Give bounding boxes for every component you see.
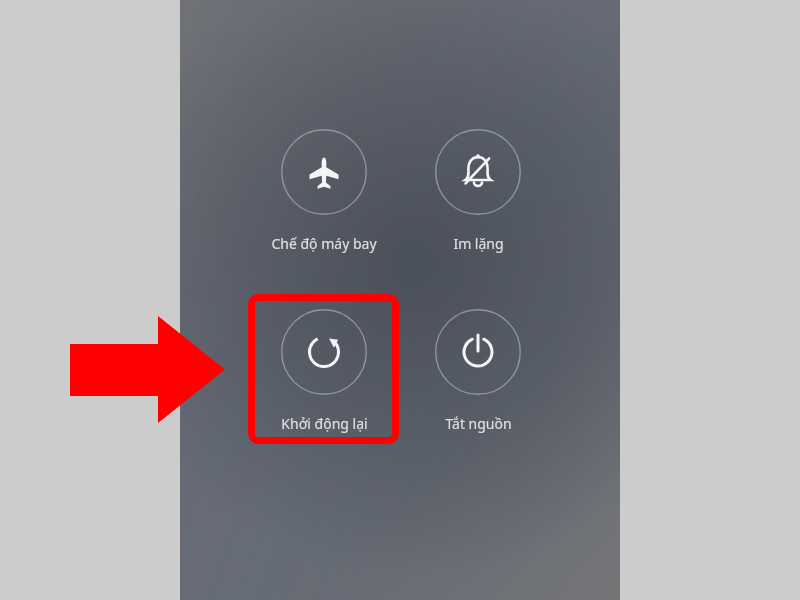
staticText: Im lặng	[453, 234, 504, 253]
staticText: Tắt nguồn	[445, 414, 512, 433]
button[interactable]: Silent mode	[403, 121, 553, 271]
button[interactable]: Airplane mode	[249, 121, 399, 271]
button[interactable]: Power off	[403, 301, 553, 451]
staticText: Chế độ máy bay	[271, 234, 377, 253]
staticText: Khởi động lại	[281, 414, 368, 433]
button[interactable]: Restart	[249, 301, 399, 451]
